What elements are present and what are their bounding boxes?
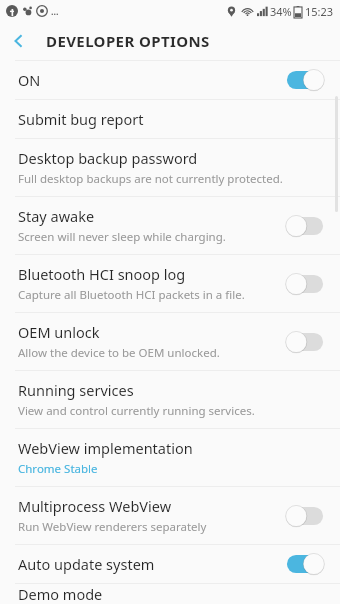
button[interactable]: Stay awake [0, 197, 340, 254]
button[interactable]: Bluetooth HCI snoop log [0, 255, 340, 312]
button[interactable]: Desktop backup password [0, 139, 340, 196]
staticText: DEVELOPER OPTIONS [46, 31, 210, 51]
button[interactable]: Toggle off [284, 213, 326, 239]
staticText: Running services [18, 380, 134, 400]
staticText: OEM unlock [18, 322, 100, 342]
staticText: Stay awake [18, 206, 95, 226]
staticText: Screen will never sleep while charging. [18, 229, 226, 245]
staticText: ... [51, 5, 59, 17]
button[interactable]: Running services [0, 371, 340, 428]
button[interactable]: Toggle off [284, 329, 326, 355]
staticText: Bluetooth HCI snoop log [18, 264, 186, 284]
button[interactable]: Demo mode [0, 584, 340, 604]
staticText: 15:23 [305, 4, 334, 19]
staticText: Allow the device to be OEM unlocked. [18, 345, 220, 361]
button[interactable]: Multiprocess WebView [0, 487, 340, 544]
button[interactable]: Auto update system [0, 545, 340, 583]
button[interactable]: WebView implementation [0, 429, 340, 486]
staticText: Full desktop backups are not currently p… [18, 171, 283, 187]
staticText: Desktop backup password [18, 148, 198, 168]
staticText: Multiprocess WebView [18, 496, 172, 516]
staticText: WebView implementation [18, 438, 193, 458]
staticText: 34% [270, 4, 292, 19]
staticText: Capture all Bluetooth HCI packets in a f… [18, 287, 245, 303]
button[interactable]: Toggle off [284, 271, 326, 297]
staticText: View and control currently running servi… [18, 403, 255, 419]
button[interactable]: Toggle on [284, 67, 326, 93]
staticText: ON [18, 70, 284, 90]
button[interactable]: ON [0, 61, 340, 99]
button[interactable]: OEM unlock [0, 313, 340, 370]
staticText: Run WebView renderers separately [18, 519, 207, 535]
button[interactable]: Back [0, 22, 38, 60]
staticText: Demo mode [18, 584, 326, 604]
staticText: Submit bug report [18, 109, 326, 129]
staticText: Chrome Stable [18, 461, 98, 477]
button[interactable]: Toggle on [284, 551, 326, 577]
button[interactable]: Submit bug report [0, 100, 340, 138]
staticText: Auto update system [18, 554, 284, 574]
button[interactable]: Toggle off [284, 503, 326, 529]
